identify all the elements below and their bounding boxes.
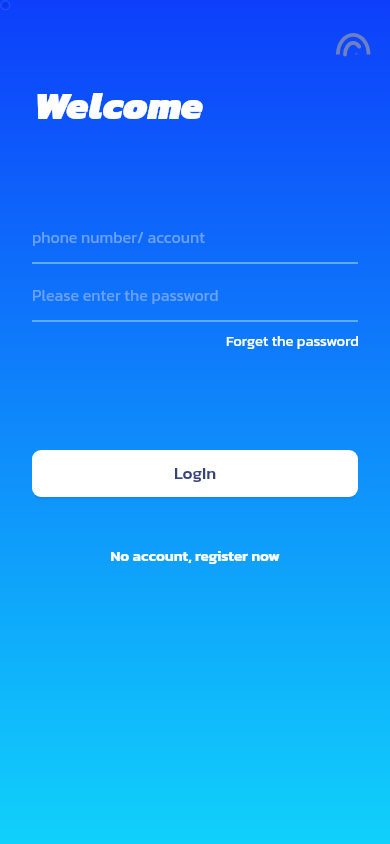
staticText: Please enter the password <box>32 283 219 307</box>
staticText: No account, register now <box>110 544 280 566</box>
button[interactable]: Forget the password <box>220 326 365 356</box>
staticText: phone number/ account <box>32 225 205 249</box>
staticText: Welcome <box>34 76 204 134</box>
button[interactable]: No account, register now <box>104 541 286 569</box>
button[interactable]: phone number/ account <box>32 223 358 259</box>
button[interactable]: Please enter the password <box>32 281 358 317</box>
staticText: Forget the password <box>226 330 359 352</box>
button[interactable]: LogIn <box>32 450 358 497</box>
other: App logo <box>330 25 376 55</box>
staticText: LogIn <box>174 460 217 485</box>
